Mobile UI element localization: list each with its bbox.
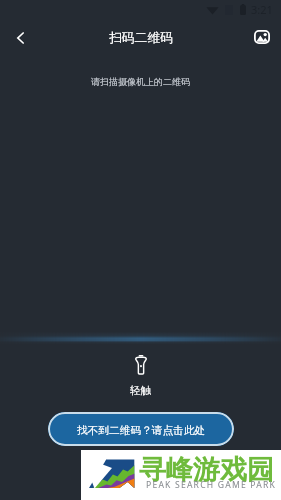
button[interactable]: Open gallery bbox=[242, 17, 281, 57]
staticText: 轻触 bbox=[130, 384, 151, 397]
button[interactable]: Back bbox=[0, 18, 40, 58]
staticText: 请扫描摄像机上的二维码 bbox=[0, 76, 281, 87]
staticText: 寻峰游戏园 bbox=[139, 453, 274, 487]
staticText: PEAK SEARCH GAME PARK bbox=[146, 479, 277, 491]
button[interactable]: Toggle flashlight bbox=[126, 349, 156, 379]
staticText: 扫码二维码 bbox=[109, 30, 173, 46]
staticText: 找不到二维码？请点击此处 bbox=[77, 424, 206, 437]
button[interactable]: 找不到二维码？请点击此处 bbox=[48, 412, 234, 446]
